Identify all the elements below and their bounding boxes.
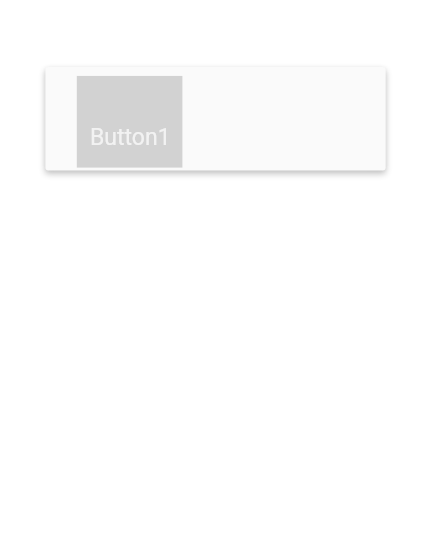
button[interactable]: Button1 <box>76 76 182 168</box>
staticText: Button1 <box>90 124 171 151</box>
